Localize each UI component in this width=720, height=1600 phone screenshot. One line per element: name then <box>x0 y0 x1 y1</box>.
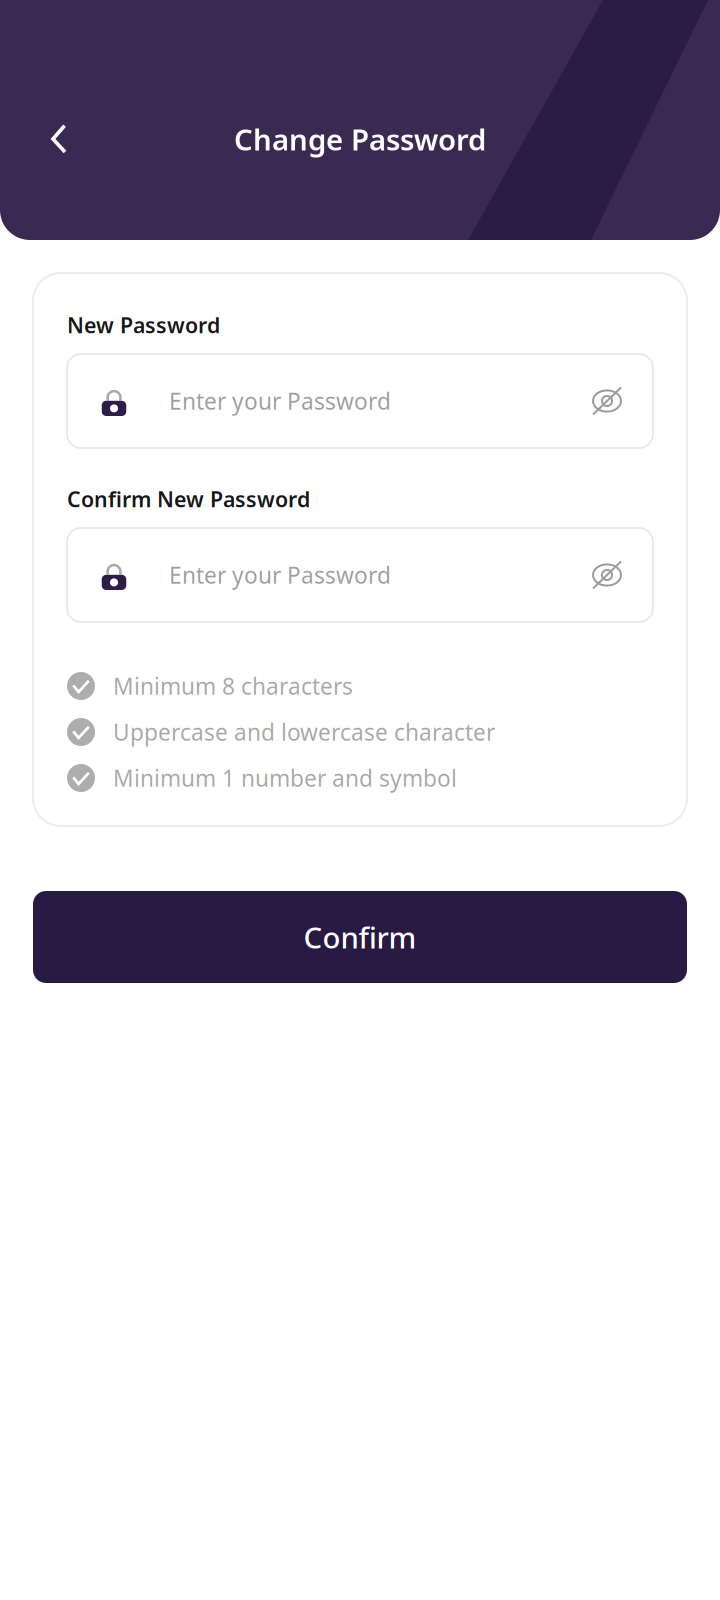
button[interactable]: Show password <box>592 560 653 589</box>
staticText: Enter your Password <box>169 560 391 590</box>
staticText: Minimum 1 number and symbol <box>113 763 457 793</box>
staticText: Confirm <box>303 917 416 956</box>
staticText: Change Password <box>234 119 486 158</box>
button[interactable]: Back <box>34 114 84 164</box>
staticText: New Password <box>67 311 220 339</box>
button[interactable]: Confirm <box>33 891 687 983</box>
staticText: Enter your Password <box>169 386 391 416</box>
staticText: Uppercase and lowercase character <box>113 717 495 747</box>
button[interactable]: Show password <box>592 386 653 415</box>
staticText: Confirm New Password <box>67 485 310 513</box>
staticText: Minimum 8 characters <box>113 671 353 701</box>
